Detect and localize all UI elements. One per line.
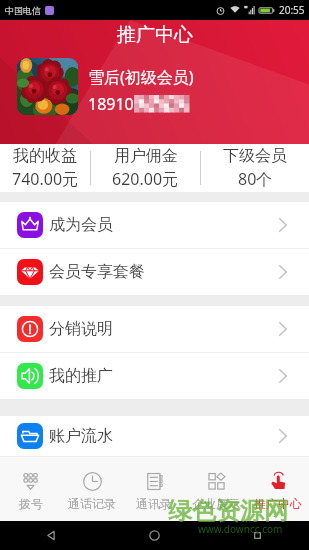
staticText: 20:55 [279, 3, 305, 17]
button[interactable]: 拨号 [0, 457, 61, 521]
staticText: 我的推广 [49, 366, 113, 386]
staticText: 80个 [238, 168, 273, 190]
button[interactable]: 成为会员 [0, 202, 309, 248]
staticText: 我的收益 [13, 146, 77, 166]
staticText: 推广中心 [117, 23, 193, 47]
staticText: 成为会员 [49, 215, 113, 235]
button[interactable]: 账户流水 [0, 416, 309, 456]
button[interactable]: 通讯录 [123, 457, 185, 521]
staticText: 下级会员 [223, 146, 287, 166]
button[interactable]: 我的推广 [0, 353, 309, 399]
staticText: 620.00元 [112, 168, 179, 190]
button[interactable]: 会员专享套餐 [0, 249, 309, 295]
button[interactable]: Back [0, 521, 103, 550]
staticText: 会员专享套餐 [49, 262, 145, 282]
button[interactable]: 通话记录 [61, 457, 123, 521]
staticText: 18910 [88, 93, 134, 115]
button[interactable]: 企业展示 [185, 457, 247, 521]
button[interactable]: 分销说明 [0, 306, 309, 352]
staticText: 用户佣金 [114, 146, 178, 166]
button[interactable]: Recent apps [206, 521, 309, 550]
staticText: 通话记录 [68, 496, 116, 511]
staticText: 通讯录 [136, 496, 172, 511]
staticText: 分销说明 [49, 319, 113, 339]
staticText: 推广中心 [254, 496, 302, 511]
button[interactable]: 推广中心 [247, 457, 309, 521]
staticText: 账户流水 [49, 426, 113, 446]
staticText: 企业展示 [192, 496, 240, 511]
staticText: 中国电信 [5, 5, 41, 16]
staticText: www.downcc.com [198, 522, 283, 536]
staticText: 绿色资源网 [168, 496, 288, 526]
staticText: 740.00元 [12, 168, 79, 190]
staticText: 雪后(初级会员) [88, 66, 194, 88]
staticText: 拨号 [19, 496, 43, 511]
button[interactable]: Home [103, 521, 206, 550]
